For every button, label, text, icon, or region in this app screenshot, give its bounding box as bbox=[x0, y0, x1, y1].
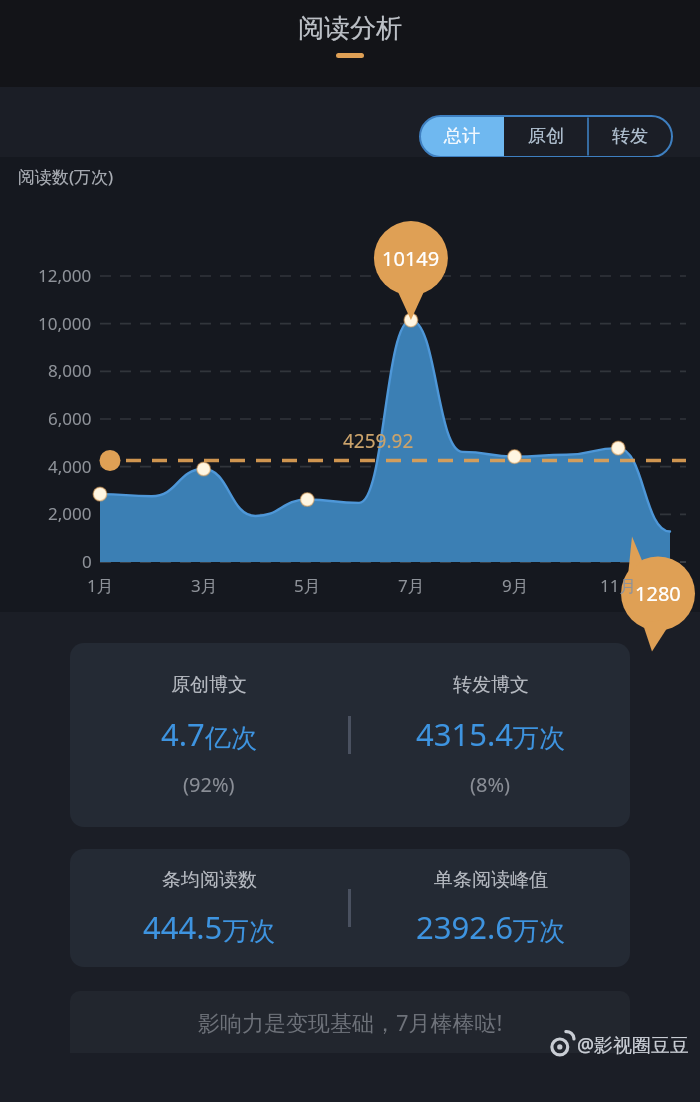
staticText: 4259.92 bbox=[343, 428, 414, 454]
staticText: 444.5 bbox=[143, 906, 223, 948]
staticText: 转发 bbox=[612, 125, 648, 148]
staticText: 10149 bbox=[382, 245, 440, 272]
staticText: @影视圈豆豆 bbox=[577, 1032, 690, 1058]
staticText: 10,000 bbox=[38, 312, 92, 335]
staticText: 原创博文 bbox=[171, 673, 247, 697]
button[interactable]: 转发 bbox=[588, 116, 672, 157]
staticText: 阅读分析 bbox=[298, 12, 402, 45]
staticText: 1月 bbox=[87, 574, 114, 597]
staticText: 8,000 bbox=[48, 359, 92, 382]
staticText: 12,000 bbox=[38, 264, 92, 287]
staticText: 阅读数(万次) bbox=[18, 165, 114, 188]
staticText: (8%) bbox=[470, 771, 511, 798]
staticText: 11月 bbox=[600, 574, 637, 597]
staticText: 1280 bbox=[635, 580, 681, 607]
staticText: 转发博文 bbox=[453, 673, 529, 697]
staticText: 6,000 bbox=[48, 407, 92, 430]
staticText: 单条阅读峰值 bbox=[434, 868, 548, 892]
button[interactable]: 条均阅读数 bbox=[70, 849, 630, 967]
staticText: 2392.6 bbox=[416, 906, 513, 948]
staticText: 原创 bbox=[528, 125, 564, 148]
button[interactable]: 原创 bbox=[504, 116, 588, 157]
button[interactable]: 总计 bbox=[420, 116, 504, 157]
staticText: 0 bbox=[82, 550, 92, 573]
staticText: 3月 bbox=[191, 574, 218, 597]
staticText: 万次 bbox=[223, 915, 275, 948]
staticText: 亿次 bbox=[205, 722, 257, 755]
button[interactable]: 原创博文 bbox=[70, 643, 630, 827]
staticText: 条均阅读数 bbox=[162, 868, 257, 892]
staticText: 7月 bbox=[398, 574, 425, 597]
staticText: (92%) bbox=[183, 771, 235, 798]
staticText: 万次 bbox=[513, 915, 565, 948]
staticText: 4315.4 bbox=[416, 713, 513, 755]
staticText: 影响力是变现基础，7月棒棒哒! bbox=[198, 1007, 503, 1037]
staticText: 5月 bbox=[294, 574, 321, 597]
staticText: 4,000 bbox=[48, 455, 92, 478]
staticText: 4.7 bbox=[161, 713, 205, 755]
staticText: 2,000 bbox=[48, 502, 92, 525]
staticText: 万次 bbox=[513, 722, 565, 755]
staticText: 总计 bbox=[444, 125, 480, 148]
staticText: 9月 bbox=[502, 574, 529, 597]
other: Weibo logo bbox=[549, 1033, 573, 1057]
